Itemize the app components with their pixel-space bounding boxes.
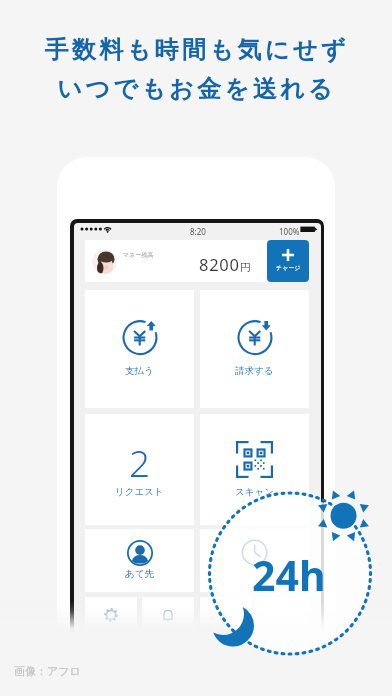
staticText: 2 — [129, 437, 151, 487]
staticText: スキャン — [235, 486, 274, 498]
button[interactable]: 支払う — [85, 290, 194, 408]
staticText: 8:20 — [190, 226, 206, 237]
button[interactable]: マネー残高 — [85, 240, 309, 282]
staticText: マネー残高 — [123, 251, 154, 259]
button[interactable]: 請求する — [200, 290, 309, 408]
staticText: 円 — [240, 261, 251, 274]
button[interactable]: Settings — [85, 597, 137, 631]
staticText: 支払う — [125, 365, 154, 377]
staticText: 請求する — [235, 365, 274, 377]
button[interactable]: あて先 — [85, 529, 194, 592]
button[interactable]: スキャン — [200, 414, 309, 525]
staticText: あて先 — [125, 568, 154, 580]
staticText: 100% — [279, 226, 300, 237]
staticText: 画像：アフロ — [14, 664, 81, 678]
staticText: 手数料も時間も気にせず — [44, 35, 349, 65]
staticText: 24h — [252, 547, 326, 603]
staticText: いつでもお金を送れる — [57, 74, 336, 104]
button[interactable]: Notifications — [142, 597, 194, 631]
staticText: 8200 — [199, 253, 240, 275]
button[interactable]: チャージ — [267, 240, 309, 282]
staticText: チャージ — [276, 264, 301, 272]
button[interactable]: 2 — [85, 414, 194, 525]
staticText: リクエスト — [115, 486, 164, 498]
